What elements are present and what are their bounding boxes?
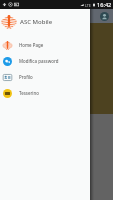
- button[interactable]: Account: [100, 12, 109, 21]
- staticText: Home Page: [19, 42, 44, 48]
- staticText: 16:42: [97, 1, 112, 9]
- staticText: Profilo: [19, 74, 33, 80]
- staticText: LTE: [85, 3, 91, 8]
- button[interactable]: ASC Mobile: [0, 9, 90, 35]
- staticText: Modifica password: [19, 58, 59, 64]
- button[interactable]: Modifica password: [0, 53, 90, 69]
- staticText: ASC Mobile: [20, 18, 53, 26]
- button[interactable]: Profilo: [0, 69, 90, 85]
- staticText: Tesserino: [19, 90, 39, 96]
- button[interactable]: Home Page: [0, 37, 90, 53]
- button[interactable]: Tesserino: [0, 85, 90, 101]
